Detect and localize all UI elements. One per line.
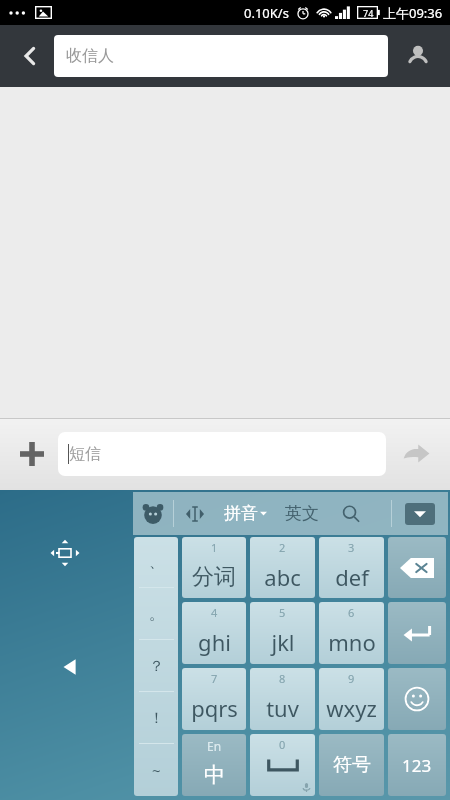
staticText: 8 — [279, 671, 286, 686]
staticText: En — [207, 738, 222, 754]
button[interactable]: Hide keyboard — [392, 492, 448, 535]
staticText: 123 — [402, 754, 432, 777]
button[interactable]: 短信 — [58, 432, 386, 476]
button[interactable]: 4 — [182, 602, 246, 664]
button[interactable]: Baidu input settings — [133, 492, 173, 535]
staticText: 0 — [279, 737, 286, 752]
button[interactable]: Contacts — [396, 34, 440, 78]
staticText: 拼音 — [224, 503, 258, 524]
button[interactable]: 7 — [182, 668, 246, 730]
staticText: tuv — [266, 693, 299, 723]
button[interactable]: Enter — [388, 602, 446, 664]
button[interactable]: 8 — [250, 668, 315, 730]
button[interactable]: Add attachment — [12, 434, 52, 474]
staticText: 符号 — [333, 753, 371, 777]
button[interactable]: Delete — [388, 537, 446, 598]
staticText: 3 — [348, 540, 355, 555]
staticText: 、 — [149, 553, 164, 572]
button[interactable]: 9 — [319, 668, 384, 730]
staticText: 6 — [348, 605, 355, 620]
staticText: 7 — [211, 671, 218, 686]
button[interactable]: 123 — [388, 734, 446, 796]
staticText: 英文 — [285, 503, 319, 524]
button[interactable]: En — [182, 734, 246, 796]
staticText: 上午09:36 — [383, 4, 443, 22]
button[interactable]: 收信人 — [54, 35, 388, 77]
button[interactable]: 3 — [319, 537, 384, 598]
button[interactable]: Cursor move — [174, 492, 216, 535]
button[interactable]: 拼音 — [216, 492, 275, 535]
staticText: ~ — [152, 760, 161, 780]
staticText: mno — [328, 627, 376, 657]
staticText: 2 — [279, 540, 286, 555]
staticText: 1 — [211, 540, 218, 555]
button[interactable]: 0 — [250, 734, 315, 796]
other: Enter — [403, 623, 431, 643]
button[interactable]: ~ — [134, 744, 178, 796]
staticText: def — [335, 562, 369, 592]
button[interactable]: 符号 — [319, 734, 384, 796]
staticText: ！ — [149, 709, 164, 728]
staticText: pqrs — [191, 693, 238, 723]
button[interactable]: 英文 — [275, 492, 329, 535]
staticText: 0.10K/s — [244, 4, 289, 22]
staticText: 。 — [149, 605, 164, 624]
staticText: ghi — [198, 627, 231, 657]
staticText: ？ — [149, 657, 164, 676]
button[interactable]: 5 — [250, 602, 315, 664]
staticText: 5 — [279, 605, 286, 620]
button[interactable]: ！ — [134, 692, 178, 744]
staticText: abc — [264, 562, 301, 592]
staticText: 74 — [363, 7, 374, 19]
staticText: 中 — [204, 762, 225, 788]
staticText: wxyz — [326, 693, 377, 723]
other: Delete — [400, 558, 434, 578]
button[interactable]: Send — [394, 432, 438, 476]
button[interactable]: Collapse keyboard — [52, 650, 86, 684]
button[interactable]: ？ — [134, 640, 178, 692]
staticText: jkl — [271, 627, 295, 657]
staticText: 4 — [211, 605, 218, 620]
staticText: 收信人 — [66, 46, 114, 66]
button[interactable]: 6 — [319, 602, 384, 664]
button[interactable]: Emoji — [388, 668, 446, 730]
button[interactable]: Back — [10, 36, 50, 76]
button[interactable]: 1 — [182, 537, 246, 598]
other: Emoji — [404, 686, 430, 712]
staticText: 分词 — [192, 563, 236, 591]
button[interactable]: 2 — [250, 537, 315, 598]
staticText: 短信 — [69, 444, 101, 464]
button[interactable]: 。 — [134, 588, 178, 640]
staticText: 9 — [348, 671, 355, 686]
button[interactable]: Search — [329, 492, 373, 535]
button[interactable]: 、 — [134, 537, 178, 588]
